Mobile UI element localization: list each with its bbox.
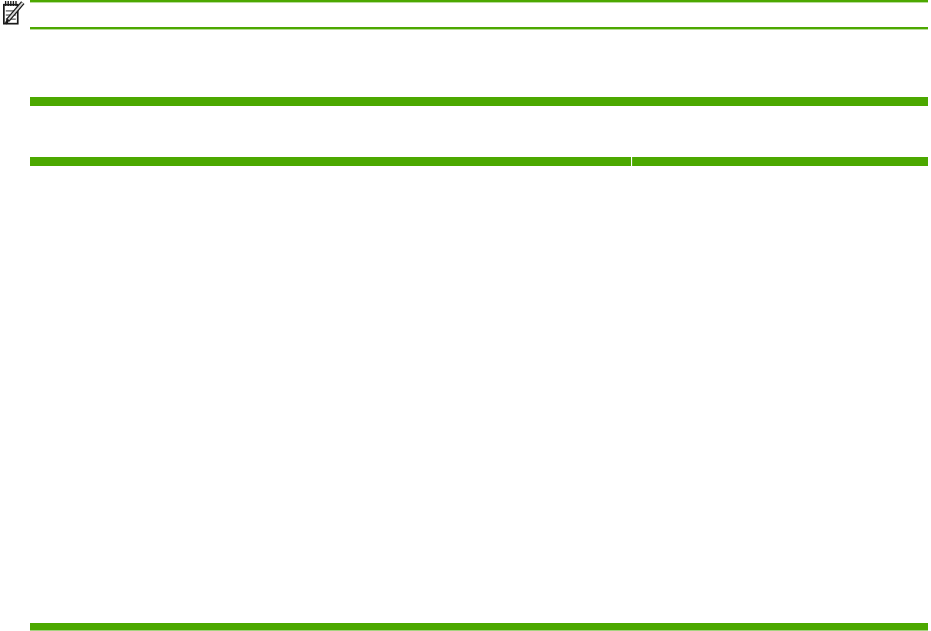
other: Note document page bbox=[0, 0, 931, 631]
